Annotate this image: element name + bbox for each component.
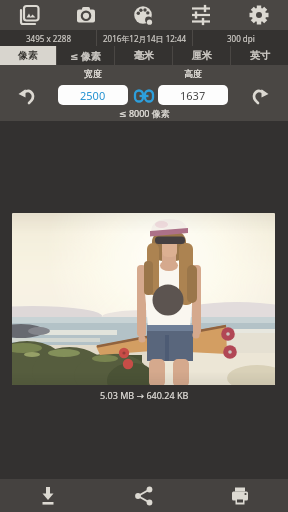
staticText: 1637 bbox=[180, 88, 206, 103]
button[interactable]: 厘米 bbox=[173, 46, 230, 65]
button[interactable] bbox=[96, 479, 192, 512]
button[interactable]: 英寸 bbox=[231, 46, 288, 65]
staticText: 3495 x 2288 bbox=[26, 33, 71, 44]
button[interactable] bbox=[0, 479, 96, 512]
staticText: 2016年12月14日 12:44 bbox=[103, 33, 187, 44]
button[interactable] bbox=[114, 0, 172, 30]
staticText: 2500 bbox=[80, 88, 106, 103]
button[interactable] bbox=[230, 0, 288, 30]
button[interactable] bbox=[0, 0, 57, 30]
staticText: 毫米 bbox=[134, 49, 154, 62]
button[interactable] bbox=[172, 0, 230, 30]
staticText: 像素 bbox=[18, 49, 38, 62]
staticText: 5.03 MB → 640.24 KB bbox=[100, 389, 189, 401]
button[interactable] bbox=[133, 88, 154, 103]
button[interactable]: 2500 bbox=[58, 85, 128, 105]
staticText: 300 dpi bbox=[227, 33, 255, 44]
button[interactable]: 1637 bbox=[158, 85, 228, 105]
button[interactable] bbox=[57, 0, 114, 30]
button[interactable] bbox=[12, 82, 42, 110]
button[interactable] bbox=[192, 479, 288, 512]
staticText: ≤ 8000 像素 bbox=[119, 107, 170, 119]
staticText: ≤ 像素 bbox=[70, 49, 101, 63]
button[interactable]: ≤ 像素 bbox=[57, 46, 114, 65]
button[interactable] bbox=[245, 82, 275, 110]
staticText: 厘米 bbox=[192, 49, 212, 62]
button[interactable]: 毫米 bbox=[115, 46, 172, 65]
staticText: 宽度 bbox=[84, 68, 102, 79]
button[interactable]: 像素 bbox=[0, 46, 56, 65]
staticText: 英寸 bbox=[250, 49, 270, 62]
staticText: 高度 bbox=[184, 68, 202, 79]
